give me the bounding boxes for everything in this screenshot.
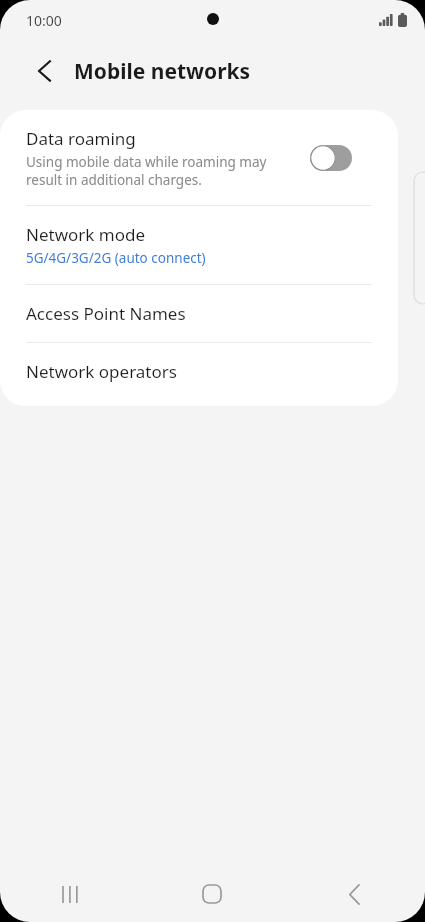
button[interactable]: Home <box>141 866 283 922</box>
button[interactable]: Back <box>283 866 425 922</box>
staticText: 5G/4G/3G/2G (auto connect) <box>26 249 206 267</box>
button[interactable]: Recents <box>0 866 141 922</box>
button[interactable]: Back <box>24 51 64 91</box>
staticText: Network mode <box>26 223 146 246</box>
button[interactable]: Network mode <box>0 206 372 284</box>
button[interactable]: Data roaming toggle <box>310 145 352 171</box>
staticText: Using mobile data while roaming may resu… <box>26 153 298 189</box>
staticText: Mobile networks <box>74 57 251 86</box>
button[interactable]: Data roaming <box>0 110 372 205</box>
staticText: Data roaming <box>26 127 136 150</box>
button[interactable]: Network operators <box>0 343 372 400</box>
button[interactable]: Access Point Names <box>0 285 372 342</box>
staticText: 10:00 <box>26 11 62 30</box>
staticText: Access Point Names <box>26 302 186 325</box>
staticText: Network operators <box>26 360 177 383</box>
